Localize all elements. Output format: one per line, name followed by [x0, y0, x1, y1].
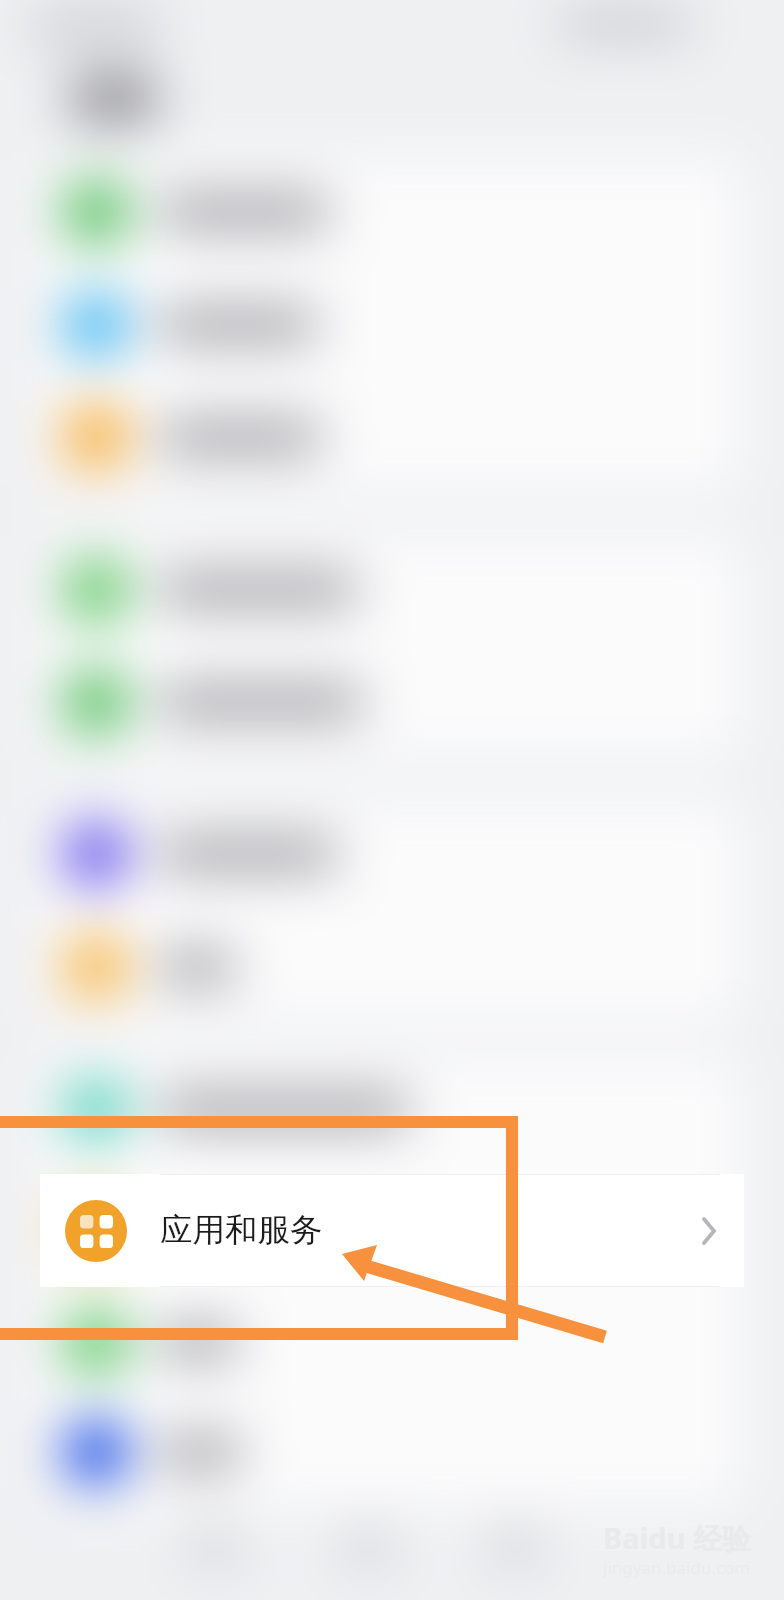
button[interactable]: 应用和服务 [40, 1174, 744, 1287]
staticText: 应用和服务 [160, 1210, 323, 1251]
other: Open 应用和服务 [702, 1217, 717, 1245]
staticText: Baidu 经验 [603, 1518, 752, 1558]
